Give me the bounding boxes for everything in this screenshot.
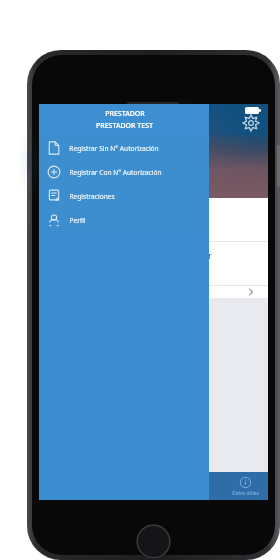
- staticText: Registrar Con N° Autorización: [69, 168, 162, 177]
- button[interactable]: More: [246, 286, 258, 298]
- staticText: Perfil: [69, 216, 86, 225]
- button[interactable]: Registrar Sin N° Autorización: [39, 136, 209, 160]
- button[interactable]: Registraciones: [39, 184, 209, 208]
- button[interactable]: Settings: [242, 114, 260, 132]
- staticText: PRESTADOR TEST: [96, 121, 153, 131]
- staticText: Registrar Sin N° Autorización: [69, 144, 159, 153]
- staticText: elular: [189, 250, 212, 262]
- button[interactable]: Datos útiles: [223, 472, 267, 500]
- button[interactable]: Perfil: [177, 472, 221, 500]
- staticText: Datos útiles: [232, 490, 259, 497]
- staticText: PRESTADOR: [105, 109, 145, 119]
- button[interactable]: Registrar Con N° Autorización: [39, 160, 209, 184]
- button[interactable]: Perfil: [39, 208, 209, 232]
- staticText: Registraciones: [69, 192, 115, 201]
